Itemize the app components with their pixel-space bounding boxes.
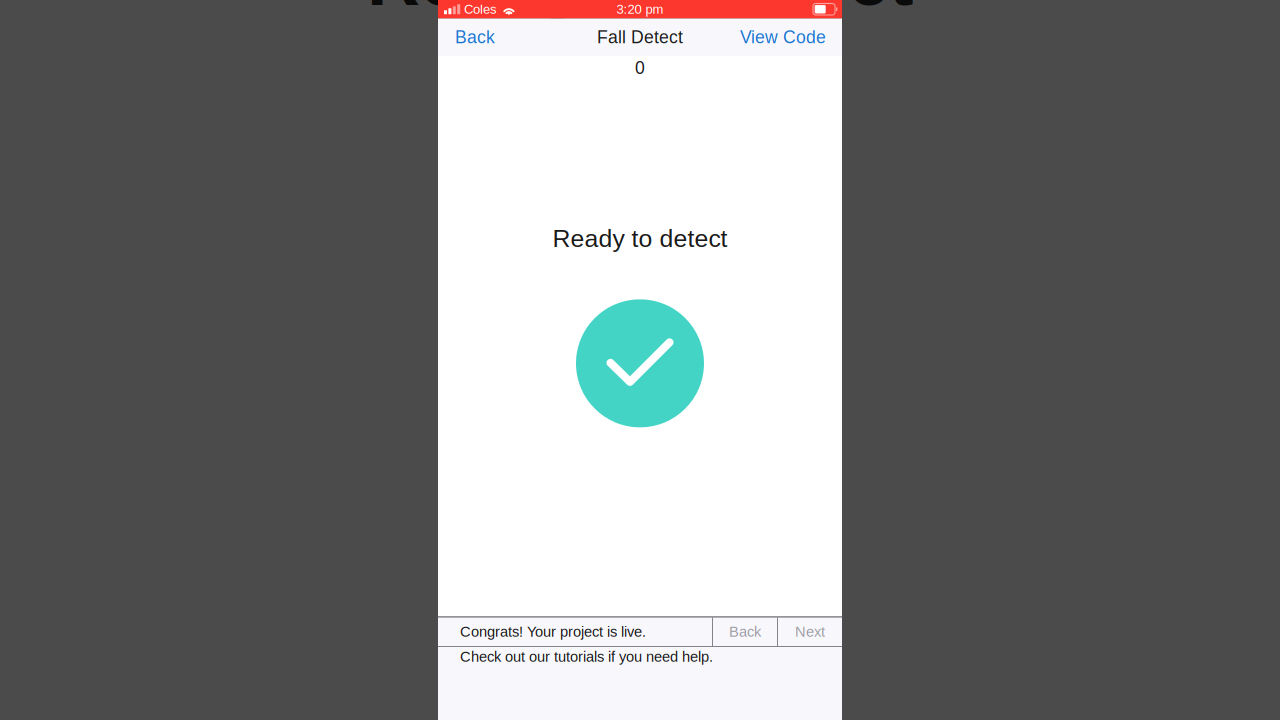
button[interactable]: Back [713, 617, 777, 646]
staticText: Ready to detect [552, 225, 727, 252]
button[interactable]: Next [778, 617, 842, 646]
staticText: 3:20 pm [616, 2, 663, 17]
staticText: Fall Detect [597, 27, 683, 47]
staticText: Check out our tutorials if you need help… [460, 648, 713, 665]
staticText: View Code [740, 27, 826, 47]
staticText: Next [795, 624, 825, 640]
staticText: Back [729, 624, 761, 640]
button[interactable]: View Code [724, 18, 842, 56]
staticText: Coles [464, 2, 497, 17]
staticText: Congrats! Your project is live. [460, 624, 646, 640]
staticText: 0 [635, 58, 645, 78]
staticText: Back [455, 27, 495, 47]
staticText: Ready to detect [367, 0, 913, 20]
button[interactable]: Back [438, 18, 512, 56]
